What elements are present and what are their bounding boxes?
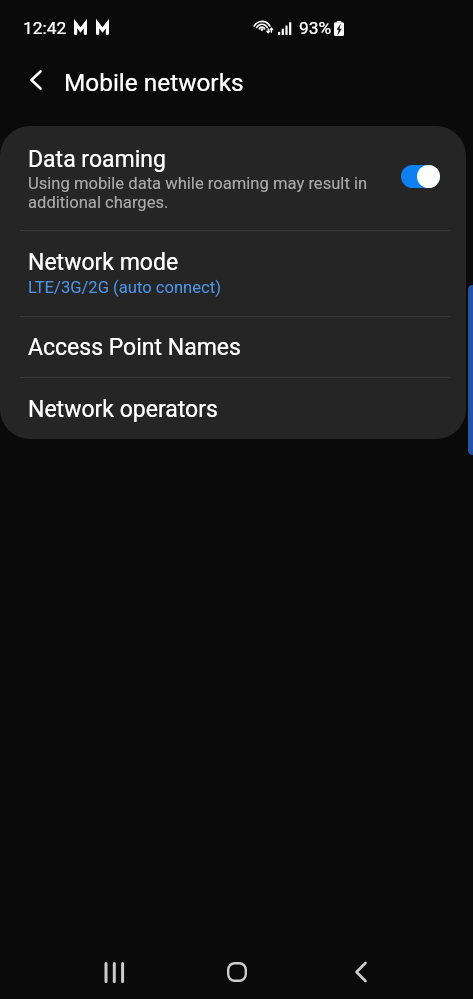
staticText: Using mobile data while roaming may resu… xyxy=(28,174,368,212)
button[interactable]: Home xyxy=(213,948,261,996)
button[interactable]: Navigate up xyxy=(17,60,57,100)
staticText: Data roaming xyxy=(28,146,166,173)
button[interactable]: Data roaming xyxy=(396,156,444,188)
staticText: 93% xyxy=(299,18,332,38)
button[interactable]: Network mode xyxy=(0,230,466,316)
button[interactable]: Data roaming xyxy=(0,126,466,230)
staticText: Network mode xyxy=(28,249,179,276)
staticText: Network operators xyxy=(28,396,218,423)
button[interactable]: Back xyxy=(338,948,386,996)
staticText: LTE/3G/2G (auto connect) xyxy=(28,278,221,297)
staticText: Access Point Names xyxy=(28,334,241,361)
button[interactable]: Network operators xyxy=(0,377,466,439)
staticText: Mobile networks xyxy=(64,68,244,97)
button[interactable]: Recent apps xyxy=(90,948,138,996)
button[interactable]: Access Point Names xyxy=(0,316,466,377)
staticText: 12:42 xyxy=(23,18,67,38)
